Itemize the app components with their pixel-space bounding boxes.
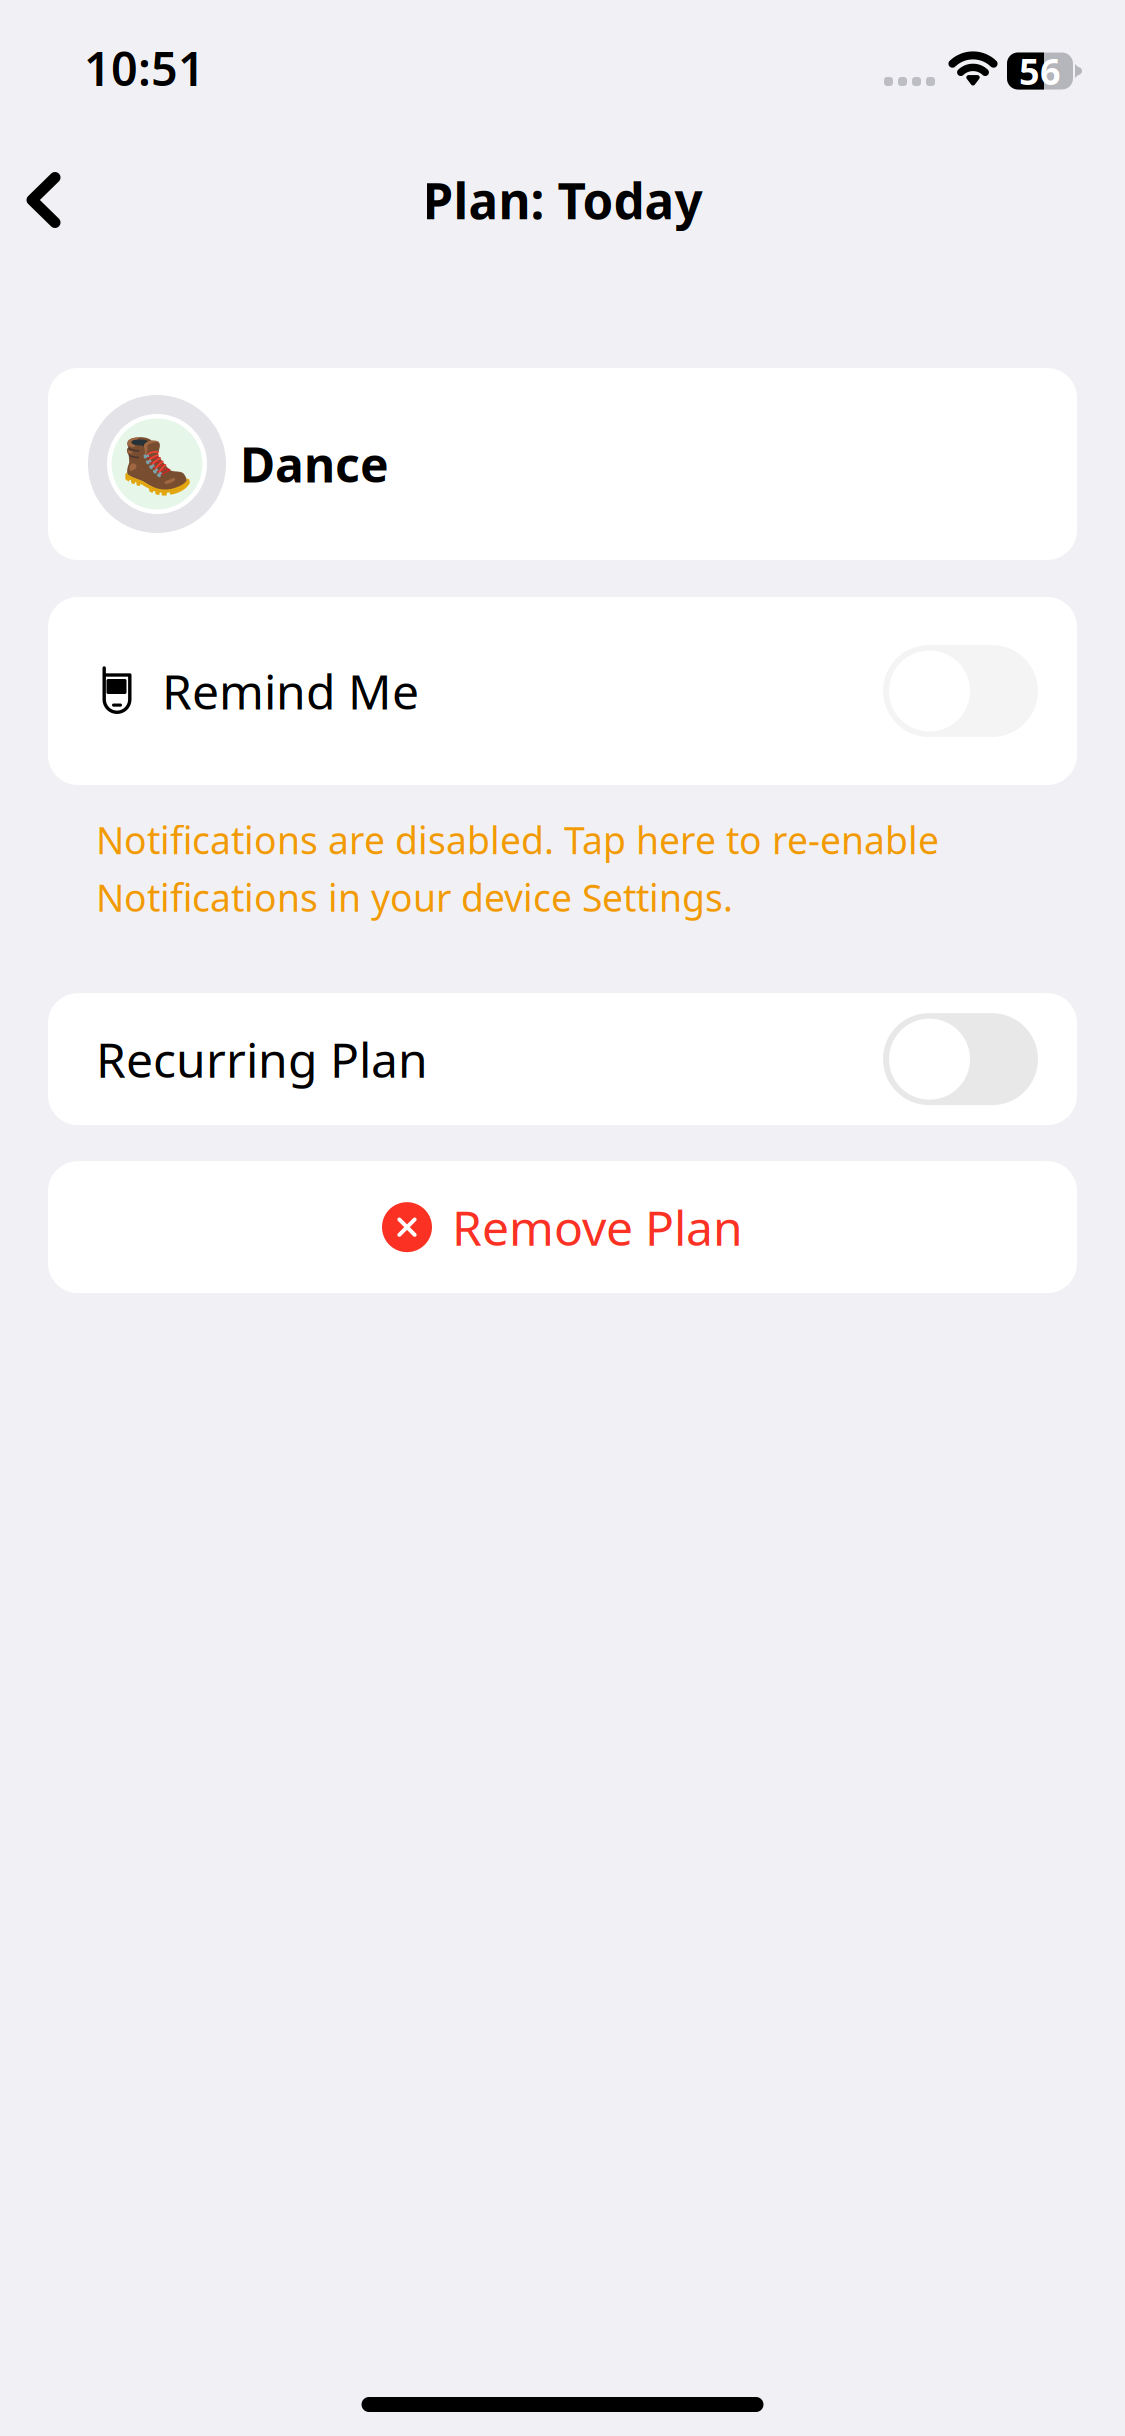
staticText: Notifications are disabled. Tap here to … bbox=[96, 815, 939, 865]
staticText: Remind Me bbox=[162, 659, 419, 723]
staticText: Notifications in your device Settings. bbox=[96, 873, 733, 922]
staticText: 56 bbox=[1019, 47, 1061, 95]
button[interactable]: Notifications are disabled. Tap here to … bbox=[48, 785, 1077, 952]
staticText: 10:51 bbox=[84, 37, 205, 99]
button[interactable]: Remove Plan bbox=[48, 1161, 1077, 1293]
button[interactable]: Back bbox=[0, 150, 91, 250]
staticText: Remove Plan bbox=[452, 1195, 743, 1259]
button[interactable]: Remind Me bbox=[48, 597, 1077, 785]
staticText: 🥾 bbox=[120, 430, 193, 497]
staticText: Plan: Today bbox=[422, 167, 702, 233]
button[interactable]: 🥾 bbox=[48, 368, 1077, 560]
staticText: Recurring Plan bbox=[96, 1027, 428, 1091]
button[interactable]: Recurring Plan bbox=[48, 993, 1077, 1125]
staticText: Dance bbox=[240, 432, 389, 496]
